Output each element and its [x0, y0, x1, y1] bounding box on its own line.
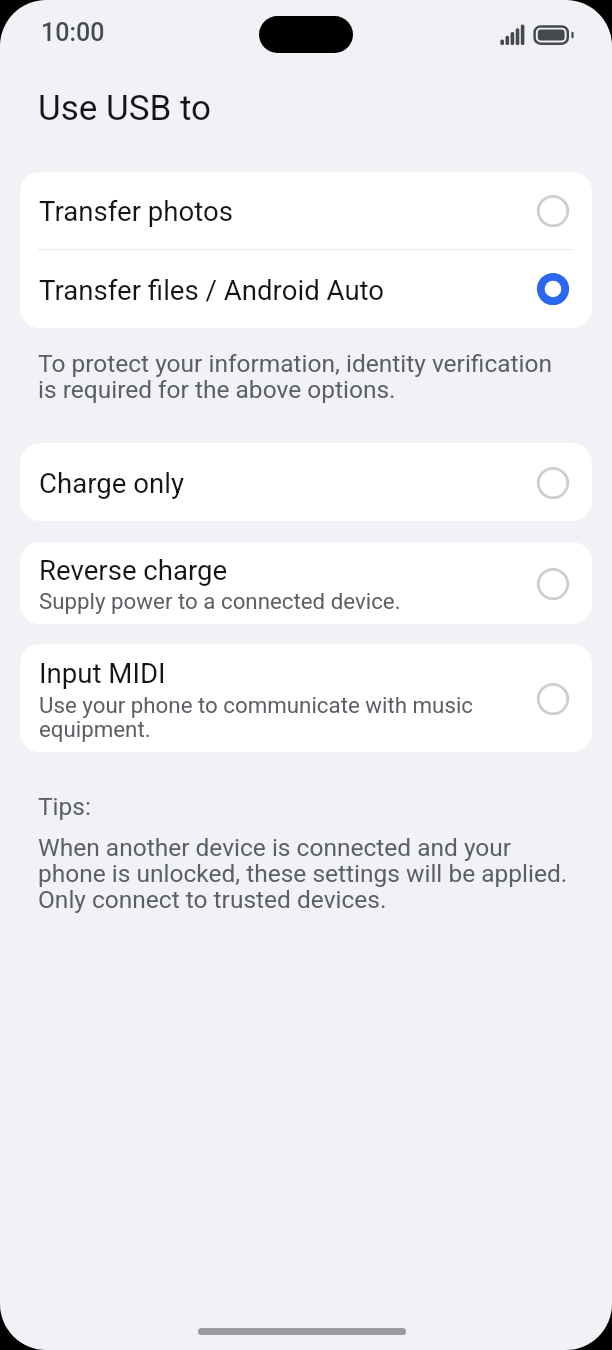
staticText: Charge only	[39, 468, 184, 499]
staticText: 10:00	[41, 20, 105, 46]
staticText: Supply power to a connected device.	[39, 590, 401, 614]
staticText: Use your phone to communicate with music…	[39, 694, 474, 742]
staticText: When another device is connected and you…	[38, 835, 568, 913]
button[interactable]: Reverse charge	[20, 542, 592, 624]
button[interactable]: Charge only	[20, 443, 592, 521]
staticText: Input MIDI	[39, 658, 166, 689]
other: Signal strength and battery level	[496, 14, 584, 50]
button[interactable]: Input MIDI	[20, 644, 592, 752]
button[interactable]: Transfer photos	[20, 172, 592, 249]
staticText: To protect your information, identity ve…	[38, 351, 553, 403]
staticText: Use USB to	[38, 88, 212, 128]
button[interactable]: Transfer files / Android Auto	[20, 250, 592, 328]
staticText: Tips:	[38, 794, 91, 820]
staticText: Transfer photos	[39, 196, 234, 227]
staticText: Reverse charge	[39, 555, 228, 586]
staticText: Transfer files / Android Auto	[39, 275, 385, 306]
